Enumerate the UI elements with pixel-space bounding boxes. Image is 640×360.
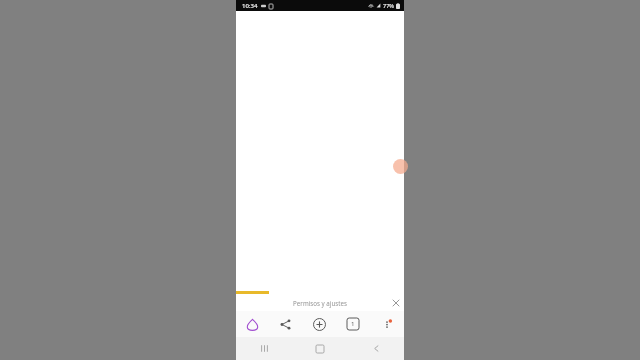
button[interactable]: Permisos y ajustes xyxy=(236,294,404,311)
staticText: 1 xyxy=(351,320,355,328)
button[interactable]: New tab xyxy=(302,311,336,337)
button[interactable]: Recent apps xyxy=(236,337,292,360)
button[interactable]: Back xyxy=(348,337,404,360)
staticText: 10:34 xyxy=(242,2,258,10)
staticText: 77% xyxy=(383,2,394,9)
button[interactable]: Home xyxy=(236,311,269,337)
button[interactable]: Tabs xyxy=(336,311,370,337)
button[interactable]: Home xyxy=(292,337,348,360)
button[interactable]: More options xyxy=(370,311,404,337)
button[interactable]: Share xyxy=(269,311,302,337)
button[interactable]: Floating action xyxy=(393,159,408,174)
staticText: Permisos y ajustes xyxy=(293,299,347,307)
button[interactable]: Close xyxy=(388,295,404,311)
